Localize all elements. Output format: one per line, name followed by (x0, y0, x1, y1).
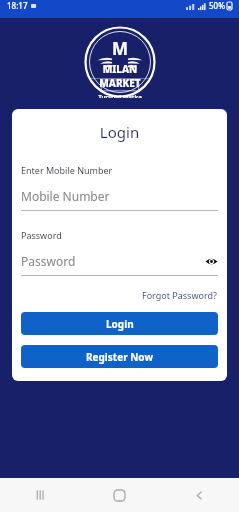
button[interactable]: Recent apps (0, 478, 79, 512)
button[interactable]: Login (21, 312, 218, 335)
staticText: Tursted Matka (98, 93, 142, 98)
staticText: Register Now (86, 350, 153, 364)
staticText: Password (21, 229, 62, 241)
staticText: Login (21, 122, 218, 142)
staticText: 50% (209, 0, 225, 11)
staticText: Enter Mobile Number (21, 164, 113, 176)
button[interactable]: Forgot Password? (141, 287, 218, 303)
staticText: Mobile Number (21, 188, 110, 204)
button[interactable]: Home (79, 478, 159, 512)
button[interactable]: Back (159, 478, 239, 512)
staticText: M (112, 37, 129, 60)
button[interactable]: Password (21, 253, 218, 276)
staticText: Login (106, 317, 134, 331)
button[interactable]: Show password (204, 254, 218, 268)
staticText: Password (21, 253, 76, 269)
button[interactable]: Register Now (21, 345, 218, 368)
staticText: Forgot Password? (142, 289, 217, 301)
button[interactable]: Mobile Number (21, 188, 218, 211)
staticText: 18:17 (7, 0, 28, 11)
staticText: MILAN MARKET (84, 62, 156, 90)
